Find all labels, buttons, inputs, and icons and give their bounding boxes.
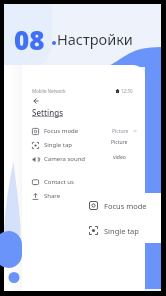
button[interactable]: Share — [4, 189, 145, 203]
button[interactable]: Back — [32, 97, 40, 105]
button[interactable]: Focus mode — [83, 193, 161, 218]
staticText: Настройки — [57, 29, 133, 49]
button[interactable]: video — [102, 150, 137, 165]
staticText: Focus mode — [44, 127, 79, 135]
staticText: Mobile Network — [32, 88, 66, 94]
staticText: Camera sound — [44, 155, 86, 163]
button[interactable]: Single tap — [83, 218, 161, 243]
staticText: 08 — [14, 22, 45, 57]
staticText: Settings — [32, 107, 64, 118]
button[interactable]: Contact us — [4, 175, 145, 189]
staticText: Single tap — [104, 226, 139, 236]
staticText: 12:30 — [121, 88, 133, 94]
staticText: Share — [44, 192, 61, 200]
button[interactable]: Camera sound — [4, 152, 145, 166]
button[interactable]: Single tap — [4, 138, 145, 152]
button[interactable]: Focus mode — [4, 124, 145, 138]
staticText: Single tap — [44, 141, 72, 149]
staticText: Picture — [112, 128, 129, 135]
staticText: Picture — [111, 139, 128, 146]
button[interactable]: Picture — [102, 135, 137, 150]
staticText: video — [113, 154, 126, 161]
staticText: Contact us — [44, 178, 74, 186]
staticText: Focus mode — [104, 201, 147, 211]
